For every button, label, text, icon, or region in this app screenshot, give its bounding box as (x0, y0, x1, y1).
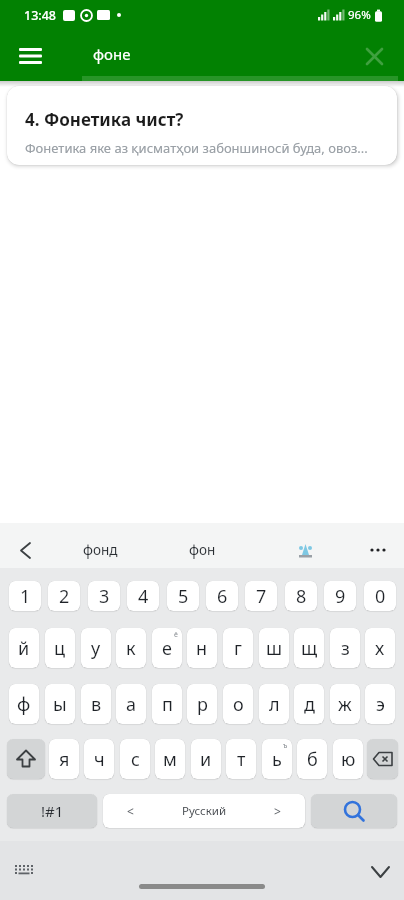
staticText: 5 (178, 584, 189, 609)
button[interactable]: у (81, 628, 111, 668)
staticText: о (233, 692, 244, 717)
button[interactable]: р (187, 684, 217, 724)
button[interactable]: я (49, 739, 79, 779)
button[interactable]: ь (262, 739, 292, 779)
button[interactable]: э (365, 684, 395, 724)
staticText: б (307, 747, 318, 772)
button[interactable]: и (191, 739, 221, 779)
button[interactable] (7, 739, 45, 779)
staticText: ь (272, 747, 282, 772)
staticText: 9 (335, 584, 346, 609)
button[interactable]: а (116, 684, 146, 724)
staticText: й (18, 636, 30, 661)
button[interactable]: 0 (364, 581, 396, 611)
staticText: л (269, 692, 280, 717)
staticText: ё (174, 630, 178, 640)
button[interactable]: ю (333, 739, 363, 779)
button[interactable]: фон (162, 531, 242, 569)
staticText: е (162, 636, 172, 661)
button[interactable] (290, 531, 320, 569)
button[interactable]: 7 (245, 581, 277, 611)
button[interactable]: в (81, 684, 111, 724)
staticText: фоне (93, 44, 131, 64)
staticText: 6 (217, 584, 228, 609)
button[interactable]: о (223, 684, 253, 724)
button[interactable]: 4 (127, 581, 159, 611)
button[interactable]: ы (45, 684, 75, 724)
staticText: 96% (348, 7, 371, 23)
staticText: в (91, 692, 102, 717)
button[interactable]: г (223, 628, 253, 668)
button[interactable]: 1 (9, 581, 41, 611)
button[interactable]: м (155, 739, 185, 779)
button[interactable] (358, 531, 398, 569)
button[interactable]: с (120, 739, 150, 779)
staticText: п (162, 692, 173, 717)
staticText: я (59, 747, 70, 772)
button[interactable]: з (330, 628, 360, 668)
staticText: > (274, 803, 281, 819)
staticText: и (200, 747, 212, 772)
staticText: 0 (375, 584, 386, 609)
button[interactable]: й (9, 628, 39, 668)
staticText: ф (17, 692, 31, 717)
staticText: ш (266, 636, 283, 661)
staticText: ц (54, 636, 66, 661)
button[interactable]: < (103, 794, 305, 828)
button[interactable]: л (259, 684, 289, 724)
button[interactable]: 2 (48, 581, 80, 611)
staticText: ы (53, 692, 67, 717)
button[interactable]: д (294, 684, 324, 724)
button[interactable]: к (116, 628, 146, 668)
staticText: г (234, 636, 242, 661)
button[interactable]: ш (259, 628, 289, 668)
button[interactable] (358, 40, 390, 72)
button[interactable]: ц (45, 628, 75, 668)
staticText: з (341, 636, 350, 661)
staticText: ъ (283, 741, 288, 751)
staticText: фон (189, 541, 216, 559)
staticText: м (163, 747, 177, 772)
staticText: с (131, 747, 140, 772)
button[interactable]: ф (9, 684, 39, 724)
staticText: !#1 (41, 801, 64, 821)
button[interactable]: е (152, 628, 182, 668)
button[interactable]: ж (330, 684, 360, 724)
staticText: к (126, 636, 136, 661)
button[interactable]: 4. Фонетика чист? (7, 86, 397, 165)
staticText: х (375, 636, 385, 661)
button[interactable]: !#1 (7, 794, 97, 828)
staticText: 8 (296, 584, 307, 609)
staticText: т (237, 747, 246, 772)
staticText: 13:48 (24, 7, 57, 24)
staticText: 1 (20, 584, 31, 609)
staticText: а (126, 692, 137, 717)
button[interactable]: п (152, 684, 182, 724)
button[interactable] (12, 38, 48, 74)
button[interactable]: щ (294, 628, 324, 668)
staticText: 2 (59, 584, 70, 609)
button[interactable]: 3 (88, 581, 120, 611)
button[interactable]: 5 (167, 581, 199, 611)
button[interactable]: ч (84, 739, 114, 779)
button[interactable]: т (226, 739, 256, 779)
button[interactable]: н (187, 628, 217, 668)
staticText: э (376, 692, 385, 717)
button[interactable]: фонд (60, 531, 140, 569)
staticText: р (197, 692, 208, 717)
button[interactable]: б (297, 739, 327, 779)
button[interactable] (10, 535, 40, 565)
button[interactable]: х (365, 628, 395, 668)
button[interactable] (311, 794, 397, 828)
staticText: д (304, 692, 315, 717)
button[interactable]: 6 (206, 581, 238, 611)
staticText: Фонетика яке аз қисматҳои забоншиносӣ бу… (25, 139, 368, 157)
button[interactable]: 8 (285, 581, 317, 611)
staticText: 4. Фонетика чист? (25, 108, 184, 131)
button[interactable]: 9 (324, 581, 356, 611)
button[interactable] (8, 859, 42, 885)
button[interactable] (362, 859, 398, 885)
staticText: ч (94, 747, 105, 772)
button[interactable] (367, 739, 398, 779)
staticText: ж (338, 692, 352, 717)
